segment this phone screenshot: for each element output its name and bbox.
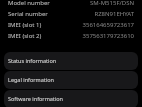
button[interactable]: Serial number — [0, 8, 142, 19]
staticText: Legal information — [8, 76, 54, 83]
button[interactable]: Software information — [4, 90, 138, 107]
button[interactable]: Status information — [4, 52, 138, 70]
staticText: IMEI (slot 2) — [8, 32, 42, 40]
staticText: 356164659723617 — [82, 21, 134, 29]
staticText: Software information — [8, 95, 63, 102]
staticText: Serial number — [8, 10, 48, 18]
button[interactable]: IMEI (slot 2) — [0, 30, 142, 41]
button[interactable]: IMEI (slot 1) — [0, 19, 142, 30]
staticText: Model number — [8, 0, 50, 7]
staticText: Status information — [8, 57, 57, 64]
staticText: 357563179723610 — [82, 32, 134, 40]
staticText: RZ8N91EHYAT — [94, 10, 134, 18]
staticText: SM-M515F/DSN — [90, 0, 134, 7]
button[interactable]: Model number — [0, 0, 142, 8]
staticText: IMEI (slot 1) — [8, 21, 42, 29]
button[interactable]: Legal information — [4, 71, 138, 89]
